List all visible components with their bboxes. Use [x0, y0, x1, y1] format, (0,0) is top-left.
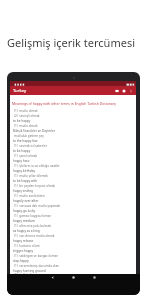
- button[interactable]: (2) sevinçli olmak: [12, 113, 136, 118]
- button[interactable]: (1) altın orta yolu bulmak: [12, 223, 136, 228]
- button[interactable]: happy ending: [12, 188, 136, 193]
- staticText: (2) sevinçli olmak: [14, 114, 40, 118]
- staticText: (1) gamsız kaygısız kimse: [14, 214, 52, 218]
- button[interactable]: (1) bir şeyden hoşnut olmak: [12, 183, 136, 188]
- button[interactable]: happy release: [12, 238, 136, 243]
- staticText: to be happy: [13, 149, 31, 153]
- staticText: happy release: [13, 239, 34, 243]
- button[interactable]: happy hunting ground: [12, 268, 136, 273]
- staticText: to the happy few: [13, 139, 38, 143]
- button[interactable]: as happy as a king: [12, 228, 136, 233]
- staticText: (1) mutlu olmak: [14, 109, 38, 113]
- button[interactable]: Camera: [115, 89, 119, 93]
- button[interactable]: Home: [72, 276, 75, 279]
- staticText: to be happy with: [13, 179, 38, 183]
- button[interactable]: (1) mutlu olmak: [12, 123, 136, 128]
- button[interactable]: to be happy with: [12, 178, 136, 183]
- staticText: Gelişmiş içerik tercümesi: [7, 35, 136, 50]
- staticText: (1) kurtarıcı ölüm: [14, 244, 40, 248]
- button[interactable]: mutluluk getiren şey: [12, 133, 136, 138]
- button[interactable]: (1) mutlu yıllar dilemek: [12, 173, 136, 178]
- button[interactable]: to be happy: [12, 118, 136, 123]
- button[interactable]: (1) son derece mutlu olmak: [12, 233, 136, 238]
- staticText: (1) sersemlemiş durumda olan: [14, 264, 60, 268]
- button[interactable]: (1) bolluk diyarı: [12, 273, 136, 275]
- staticText: happy hunting ground: [13, 269, 46, 273]
- staticText: (1) mutlu yıllar dilemek: [14, 174, 48, 178]
- button[interactable]: to be happy: [12, 148, 136, 153]
- staticText: (1) saldırgan ve kavgacı kimse: [14, 254, 58, 258]
- staticText: mutluluk getiren şey: [14, 134, 44, 138]
- staticText: slap-happy: [13, 259, 29, 263]
- staticText: (1) şanslı olmak: [14, 154, 38, 158]
- staticText: happy-go-lucky: [13, 209, 36, 213]
- button[interactable]: Favorite: [122, 89, 126, 93]
- staticText: trigger-happy: [13, 249, 33, 253]
- staticText: (1) mutlu sonla biten: [14, 194, 45, 198]
- button[interactable]: Back: [51, 276, 54, 279]
- staticText: happy ending: [13, 189, 33, 193]
- staticText: happy birthday: [13, 169, 35, 173]
- button[interactable]: happy hour: [12, 158, 136, 163]
- button[interactable]: to the happy few: [12, 138, 136, 143]
- staticText: happy medium: [13, 219, 35, 223]
- staticText: Meanings of happy with other terms in En…: [12, 101, 116, 106]
- staticText: Turkey: [13, 88, 27, 94]
- staticText: to be happy: [13, 119, 31, 123]
- button[interactable]: (1) sevindirici haberler: [12, 143, 136, 148]
- button[interactable]: (1) sersemlemiş durumda olan: [12, 263, 136, 268]
- button[interactable]: (1) saldırgan ve kavgacı kimse: [12, 253, 136, 258]
- button[interactable]: More options: [129, 89, 133, 93]
- button[interactable]: Recent apps: [93, 276, 96, 279]
- button[interactable]: happy-go-lucky: [12, 208, 136, 213]
- button[interactable]: Bileşik Sözcükler ve Deyimler: [12, 128, 136, 133]
- button[interactable]: (1) şanslı olmak: [12, 153, 136, 158]
- staticText: (1) son derece mutlu olmak: [14, 234, 55, 238]
- button[interactable]: happy medium: [12, 218, 136, 223]
- button[interactable]: happy birthday: [12, 168, 136, 173]
- button[interactable]: (1) mutlu olmak: [12, 108, 136, 113]
- staticText: happily ever after: [13, 199, 39, 203]
- staticText: (1) mutlu olmak: [14, 124, 38, 128]
- button[interactable]: (1) içkilerin ucuz olduğu saatler: [12, 163, 136, 168]
- staticText: (1) altın orta yolu bulmak: [14, 224, 52, 228]
- staticText: happy hour: [13, 159, 30, 163]
- staticText: (1) bir şeyden hoşnut olmak: [14, 184, 56, 188]
- staticText: (1) sonsuza dek mutlu yaşamak: [14, 204, 61, 208]
- button[interactable]: trigger-happy: [12, 248, 136, 253]
- button[interactable]: (1) gamsız kaygısız kimse: [12, 213, 136, 218]
- button[interactable]: slap-happy: [12, 258, 136, 263]
- button[interactable]: (1) mutlu sonla biten: [12, 193, 136, 198]
- staticText: (1) bolluk diyarı: [14, 273, 38, 275]
- button[interactable]: (1) sonsuza dek mutlu yaşamak: [12, 203, 136, 208]
- button[interactable]: happily ever after: [12, 198, 136, 203]
- staticText: (1) içkilerin ucuz olduğu saatler: [14, 164, 60, 168]
- staticText: as happy as a king: [13, 229, 40, 233]
- button[interactable]: (1) kurtarıcı ölüm: [12, 243, 136, 248]
- staticText: (1) sevindirici haberler: [14, 144, 47, 148]
- staticText: Bileşik Sözcükler ve Deyimler: [13, 129, 55, 133]
